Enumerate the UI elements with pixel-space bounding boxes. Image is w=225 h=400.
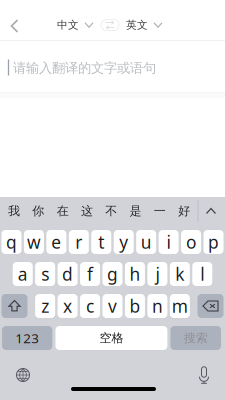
staticText: d (62, 262, 73, 285)
button[interactable]: Dictation (189, 363, 219, 387)
button[interactable]: 我 (2, 198, 26, 224)
button[interactable]: e (46, 230, 66, 254)
staticText: 在 (57, 204, 69, 218)
staticText: r (75, 230, 82, 253)
button[interactable]: Shift (1, 294, 27, 318)
button[interactable]: 这 (75, 198, 99, 224)
staticText: e (51, 230, 61, 253)
button[interactable]: l (192, 262, 212, 286)
button[interactable]: 在 (50, 198, 75, 224)
staticText: q (6, 230, 17, 253)
button[interactable]: m (170, 294, 190, 318)
staticText: v (108, 294, 117, 317)
staticText: j (155, 262, 159, 285)
button[interactable]: g (102, 262, 122, 286)
button[interactable]: Delete (197, 294, 223, 318)
staticText: a (18, 262, 28, 285)
staticText: i (167, 230, 171, 253)
staticText: l (200, 262, 204, 285)
staticText: y (119, 230, 128, 253)
staticText: w (27, 230, 41, 253)
staticText: n (152, 294, 163, 317)
staticText: t (98, 230, 104, 253)
staticText: 好 (178, 204, 190, 218)
button[interactable]: o (181, 230, 201, 254)
button[interactable]: 不 (99, 198, 123, 224)
staticText: m (172, 294, 188, 317)
staticText: 英文 (126, 18, 148, 31)
staticText: c (86, 294, 94, 317)
staticText: 123 (15, 329, 39, 347)
staticText: 搜索 (184, 331, 208, 345)
button[interactable]: s (35, 262, 55, 286)
button[interactable]: d (58, 262, 78, 286)
button[interactable]: Back (0, 8, 30, 44)
staticText: s (41, 262, 49, 285)
button[interactable]: Switch keyboard (8, 363, 38, 387)
button[interactable]: f (80, 262, 100, 286)
button[interactable]: c (80, 294, 100, 318)
staticText: 空格 (99, 331, 123, 345)
button[interactable]: 中文 (57, 12, 93, 38)
button[interactable]: Swap languages (101, 19, 119, 30)
staticText: k (175, 262, 184, 285)
staticText: g (107, 262, 118, 285)
staticText: u (141, 230, 152, 253)
button[interactable]: h (125, 262, 145, 286)
button[interactable]: r (69, 230, 89, 254)
button[interactable]: i (159, 230, 179, 254)
staticText: 不 (105, 204, 117, 218)
button[interactable]: z (35, 294, 55, 318)
button[interactable]: 一 (148, 198, 172, 224)
button[interactable]: w (24, 230, 44, 254)
staticText: 一 (154, 204, 166, 218)
button[interactable]: 空格 (55, 326, 167, 350)
button[interactable]: t (91, 230, 111, 254)
staticText: o (186, 230, 196, 253)
button[interactable]: 123 (2, 326, 52, 350)
button[interactable]: u (136, 230, 156, 254)
button[interactable]: 你 (26, 198, 50, 224)
staticText: b (129, 294, 140, 317)
staticText: z (41, 294, 49, 317)
button[interactable]: 英文 (126, 12, 162, 38)
button[interactable]: q (1, 230, 21, 254)
button[interactable]: n (147, 294, 167, 318)
button[interactable]: b (125, 294, 145, 318)
button[interactable]: x (58, 294, 78, 318)
button[interactable]: y (114, 230, 134, 254)
staticText: 这 (81, 204, 93, 218)
staticText: 我 (8, 204, 20, 218)
staticText: 请输入翻译的文字或语句 (13, 60, 156, 76)
button[interactable]: a (13, 262, 33, 286)
button[interactable]: p (203, 230, 223, 254)
button[interactable]: 是 (123, 198, 148, 224)
staticText: 中文 (57, 18, 79, 31)
button[interactable]: k (170, 262, 190, 286)
staticText: f (87, 262, 93, 285)
button[interactable]: Expand candidates (200, 198, 222, 224)
staticText: h (129, 262, 140, 285)
staticText: 你 (32, 204, 44, 218)
button[interactable]: v (102, 294, 122, 318)
button[interactable]: 搜索 (170, 326, 221, 350)
button[interactable]: j (147, 262, 167, 286)
staticText: x (63, 294, 72, 317)
button[interactable]: 好 (172, 198, 196, 224)
staticText: p (208, 230, 219, 253)
staticText: 是 (129, 204, 141, 218)
